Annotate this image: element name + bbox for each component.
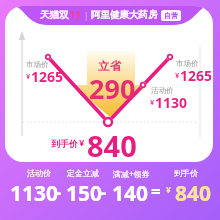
staticText: 立省 [98, 59, 121, 73]
staticText: 自营 [164, 11, 178, 20]
staticText: 天猫双 [40, 9, 69, 21]
staticText: ¥ [150, 97, 155, 107]
staticText: ¥ [26, 71, 31, 81]
staticText: - [100, 179, 107, 205]
staticText: 到手价 [174, 168, 198, 178]
staticText: 市场价 [176, 59, 199, 68]
staticText: = [151, 180, 161, 203]
staticText: | [82, 10, 91, 21]
staticText: 1130 [155, 93, 188, 112]
staticText: - [55, 179, 62, 205]
staticText: ¥ [175, 70, 180, 80]
staticText: 满减+领券 [113, 168, 150, 179]
staticText: ¥ [79, 136, 85, 149]
staticText: 150 [66, 179, 103, 208]
staticText: 1265 [180, 66, 213, 85]
staticText: 阿里健康大药房 [91, 9, 158, 21]
staticText: ¥ [166, 184, 171, 196]
staticText: 140 [112, 179, 149, 208]
staticText: 11 [69, 8, 82, 22]
staticText: 定金立减 [67, 168, 99, 178]
staticText: 290 [89, 70, 136, 107]
staticText: 市场价 [26, 60, 49, 69]
staticText: 840 [175, 179, 212, 208]
staticText: 1265 [31, 67, 64, 86]
staticText: 1130 [10, 179, 59, 208]
staticText: 到手价 [51, 138, 78, 149]
staticText: 840 [87, 126, 137, 165]
staticText: 活动价 [151, 86, 174, 95]
staticText: 活动价 [27, 168, 51, 178]
